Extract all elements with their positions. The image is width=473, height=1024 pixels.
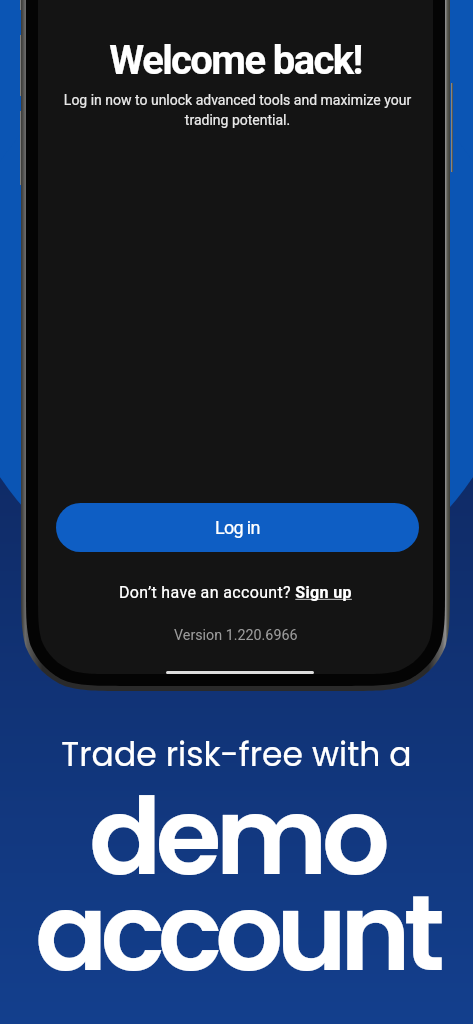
staticText: account: [35, 858, 438, 1008]
staticText: Log in now to unlock advanced tools and …: [58, 92, 417, 128]
staticText: Don’t have an account? Sign up: [119, 583, 352, 602]
staticText: Welcome back!: [109, 37, 362, 84]
staticText: Trade risk-free with a: [61, 731, 412, 777]
staticText: Version 1.220.6966: [174, 627, 298, 644]
staticText: demo: [89, 762, 384, 912]
button[interactable]: Log in: [56, 503, 419, 552]
button[interactable]: Don’t have an account? Sign up: [119, 583, 352, 602]
staticText: Log in: [215, 517, 260, 538]
